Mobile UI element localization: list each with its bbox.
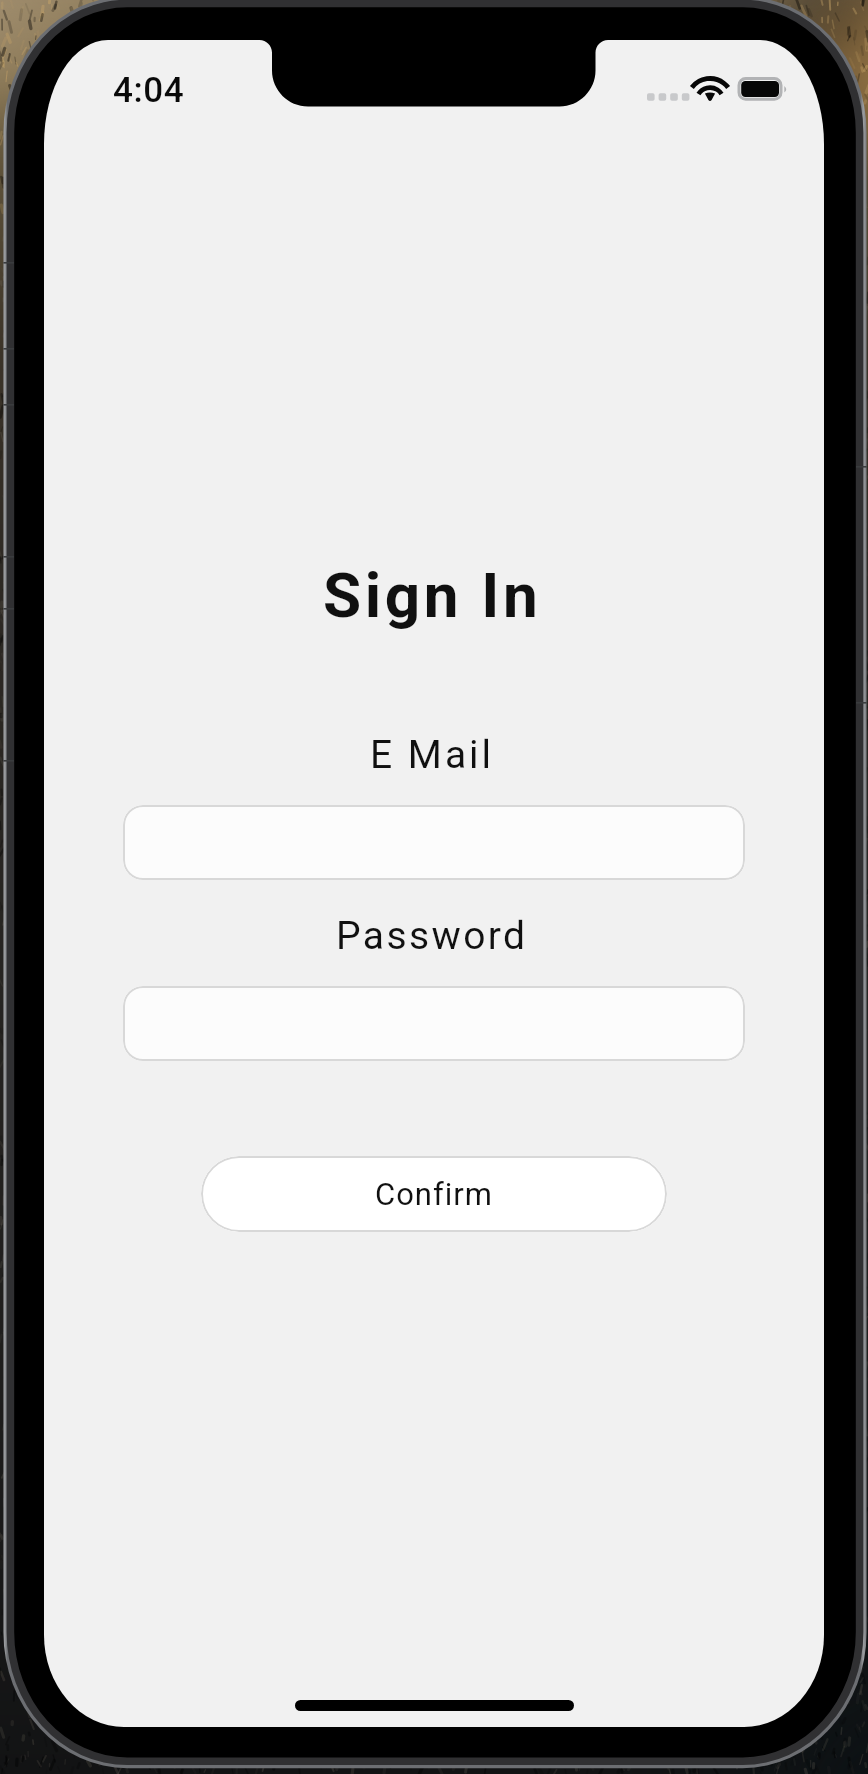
staticText: 4:04 (113, 70, 185, 111)
button[interactable]: Confirm (201, 1156, 667, 1232)
staticText: Password (336, 913, 528, 959)
button[interactable] (123, 986, 745, 1061)
button[interactable] (123, 805, 745, 880)
staticText: Sign In (323, 559, 542, 632)
staticText: E Mail (370, 732, 495, 778)
staticText: Confirm (375, 1176, 493, 1212)
